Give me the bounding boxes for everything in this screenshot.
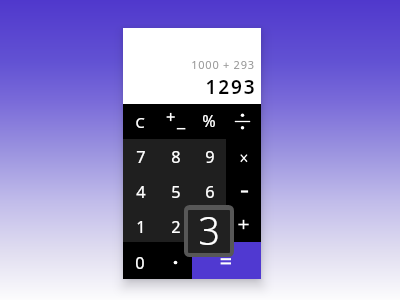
staticText: 6	[205, 181, 215, 203]
button[interactable]: 2	[158, 209, 193, 244]
button[interactable]: Plus minus	[158, 104, 193, 139]
button[interactable]: Zero	[122, 245, 157, 280]
button[interactable]: Minus	[227, 174, 262, 209]
button[interactable]: Clear	[122, 104, 157, 139]
staticText: 1000 + 293	[191, 57, 255, 72]
staticText: 9	[205, 146, 215, 168]
staticText: 4	[136, 181, 146, 203]
button[interactable]: Equals	[192, 242, 261, 279]
staticText: C	[135, 112, 145, 132]
button[interactable]: Decimal point	[158, 245, 193, 280]
button[interactable]: 4	[123, 174, 158, 209]
button[interactable]: 6	[192, 174, 227, 209]
button[interactable]: 9	[192, 139, 227, 174]
staticText: 0	[135, 252, 145, 274]
button[interactable]: Divide	[225, 104, 260, 139]
button[interactable]: 1	[123, 209, 158, 244]
staticText: 7	[136, 146, 146, 168]
staticText: 2	[171, 216, 181, 238]
button[interactable]: Percent	[191, 103, 226, 138]
button[interactable]: 8	[158, 139, 193, 174]
button[interactable]: 5	[158, 174, 193, 209]
button[interactable]: 7	[123, 139, 158, 174]
staticText: 1	[136, 216, 146, 238]
button[interactable]: 3	[192, 209, 227, 244]
staticText: 3	[198, 210, 220, 247]
button[interactable]: Multiply	[227, 139, 262, 174]
staticText: 5	[171, 181, 181, 203]
staticText: 3	[205, 216, 215, 238]
staticText: 1293	[205, 74, 257, 100]
button[interactable]: Plus	[226, 207, 261, 242]
staticText: 8	[171, 146, 181, 168]
staticText: %	[202, 110, 216, 132]
